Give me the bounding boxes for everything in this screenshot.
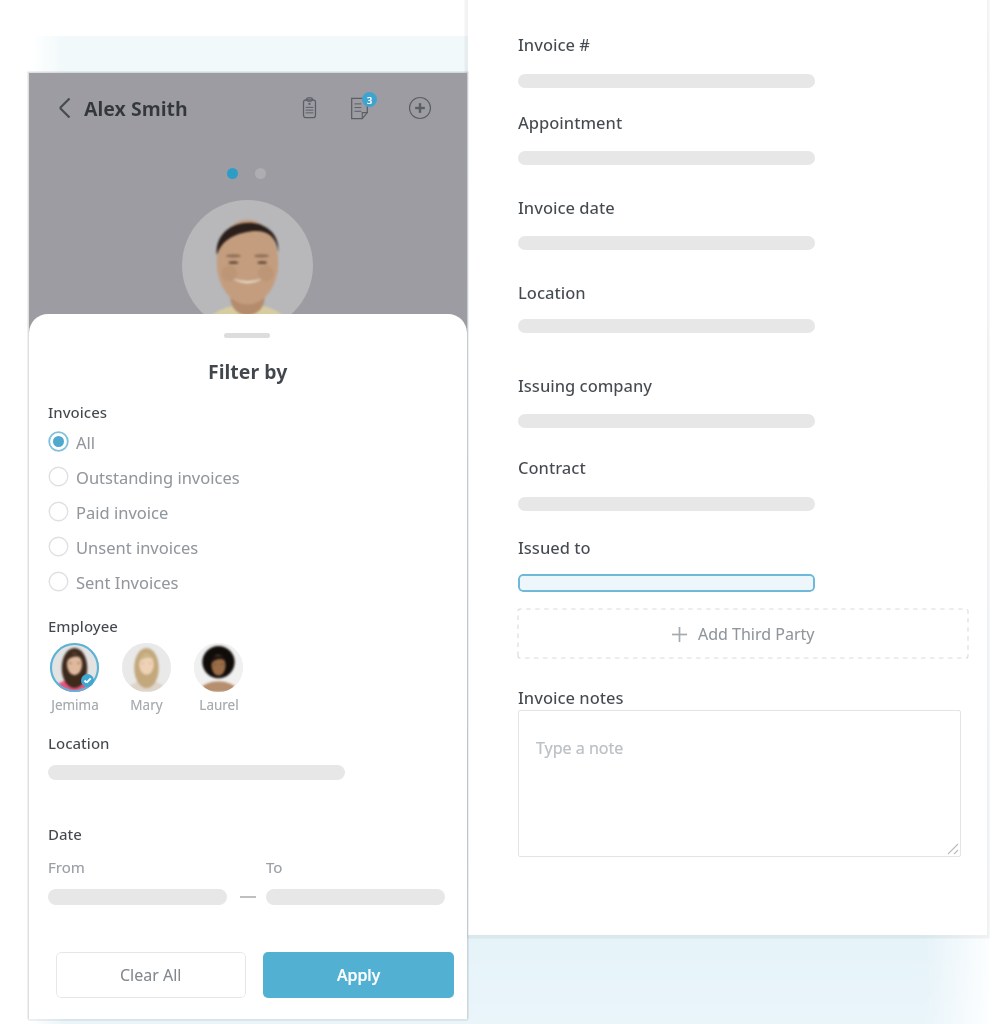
button[interactable]: Outstanding invoices — [48, 462, 318, 491]
button[interactable]: All — [48, 427, 318, 456]
button[interactable]: Paid invoice — [48, 497, 318, 526]
staticText: Invoice # — [518, 33, 590, 55]
staticText: Clear All — [120, 964, 182, 986]
button[interactable]: Clear All — [56, 952, 246, 998]
button[interactable]: Clipboard — [291, 90, 327, 126]
button[interactable]: Add Third Party — [518, 609, 968, 658]
button[interactable] — [255, 168, 266, 179]
staticText: Laurel — [199, 696, 239, 714]
staticText: Contract — [518, 456, 586, 478]
button[interactable]: Mary — [122, 643, 192, 715]
button[interactable]: Type a note — [518, 710, 961, 857]
button[interactable]: Laurel — [194, 643, 264, 715]
staticText: Apply — [337, 964, 381, 986]
staticText: Jemima — [51, 696, 99, 714]
staticText: Mary — [130, 696, 163, 714]
staticText: Invoice notes — [518, 686, 624, 708]
staticText: Add Third Party — [698, 623, 815, 645]
staticText: Appointment — [518, 111, 623, 133]
button[interactable]: Jemima — [50, 643, 120, 715]
staticText: Filter by — [208, 358, 288, 385]
staticText: Paid invoice — [76, 501, 169, 523]
button[interactable]: Add — [402, 90, 438, 126]
staticText: 3 — [367, 94, 373, 106]
staticText: From — [48, 857, 85, 877]
button[interactable]: Sent Invoices — [48, 567, 318, 596]
staticText: Outstanding invoices — [76, 466, 240, 488]
staticText: Sent Invoices — [76, 571, 179, 593]
staticText: Invoice date — [518, 196, 615, 218]
staticText: Issued to — [518, 536, 591, 558]
staticText: Location — [518, 281, 586, 303]
staticText: Alex Smith — [84, 95, 188, 122]
staticText: Invoices — [48, 402, 108, 422]
button[interactable]: Back — [49, 91, 83, 125]
button[interactable]: Apply — [263, 952, 454, 998]
button[interactable] — [518, 574, 815, 592]
staticText: Location — [48, 733, 110, 753]
staticText: Employee — [48, 616, 118, 636]
staticText: Unsent invoices — [76, 536, 199, 558]
staticText: Type a note — [536, 737, 624, 759]
button[interactable]: Documents, 3 new — [345, 90, 381, 126]
staticText: All — [76, 431, 96, 453]
staticText: Issuing company — [518, 374, 653, 396]
button[interactable] — [227, 168, 238, 179]
staticText: Date — [48, 824, 82, 844]
button[interactable]: Unsent invoices — [48, 532, 318, 561]
staticText: To — [266, 857, 283, 877]
